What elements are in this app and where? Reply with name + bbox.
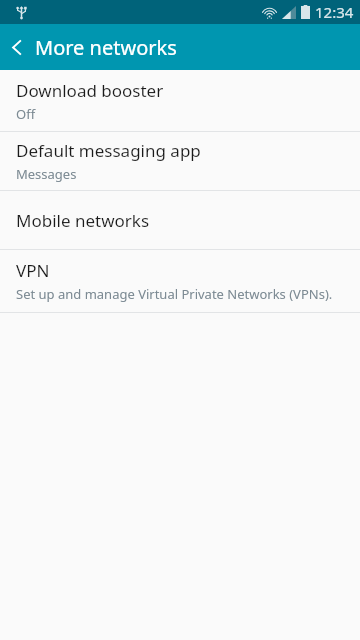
staticText: Off xyxy=(16,105,36,123)
button[interactable]: Default messaging app xyxy=(0,132,360,190)
staticText: Mobile networks xyxy=(16,209,150,232)
button[interactable]: Navigate up xyxy=(0,30,34,64)
staticText: VPN xyxy=(16,259,50,282)
staticText: 12:34 xyxy=(315,2,354,22)
staticText: Download booster xyxy=(16,79,164,102)
staticText: More networks xyxy=(35,34,177,61)
button[interactable]: Download booster xyxy=(0,70,360,131)
staticText: Default messaging app xyxy=(16,139,201,162)
staticText: Set up and manage Virtual Private Networ… xyxy=(16,285,333,303)
button[interactable]: Mobile networks xyxy=(0,191,360,249)
staticText: Messages xyxy=(16,165,77,183)
button[interactable]: VPN xyxy=(0,250,360,312)
